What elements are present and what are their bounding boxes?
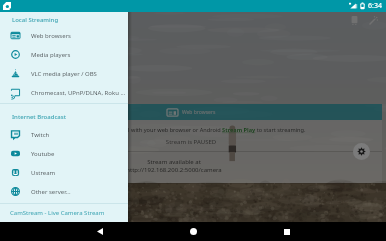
staticText: Stream available at (0, 158, 348, 166)
staticText: http://192.168.200.2:5000/camera (0, 166, 348, 174)
button[interactable]: Back (90, 222, 109, 241)
button[interactable]: Twitch (0, 125, 128, 144)
button[interactable]: Settings (353, 143, 370, 160)
button[interactable]: Switch camera (346, 12, 363, 29)
staticText: Youtube (31, 150, 55, 158)
button[interactable]: Effects (365, 12, 382, 29)
staticText: Other server... (31, 188, 71, 196)
staticText: Twitch (31, 131, 50, 139)
staticText: Ustream (31, 169, 56, 177)
staticText: VLC media player / OBS (31, 70, 97, 78)
button[interactable]: Ustream (0, 163, 128, 182)
staticText: Chromecast, UPnP/DLNA, Roku ... (31, 89, 126, 97)
staticText: CamStream - Live Camera Stream (10, 209, 105, 217)
button[interactable]: Web browsers (0, 104, 382, 120)
staticText: Local Streaming (12, 16, 59, 24)
staticText: 6:34 (368, 1, 382, 11)
staticText: Stream is PAUSED (0, 138, 382, 146)
button[interactable]: Youtube (0, 144, 128, 163)
staticText: Web browsers (31, 32, 71, 40)
staticText: Open the stream url with your web browse… (0, 126, 382, 134)
staticText: CamStream (9, 15, 60, 27)
staticText: Web browsers (182, 109, 216, 116)
button[interactable]: Recents (277, 222, 296, 241)
button[interactable]: Media players (0, 45, 128, 64)
button[interactable]: Home (184, 222, 203, 241)
button[interactable]: Web browsers (0, 26, 128, 45)
button[interactable]: Chromecast, UPnP/DLNA, Roku ... (0, 83, 128, 102)
button[interactable]: VLC media player / OBS (0, 64, 128, 83)
staticText: Internet Broadcast (12, 113, 66, 121)
staticText: Media players (31, 51, 71, 59)
button[interactable]: Other server... (0, 182, 128, 201)
